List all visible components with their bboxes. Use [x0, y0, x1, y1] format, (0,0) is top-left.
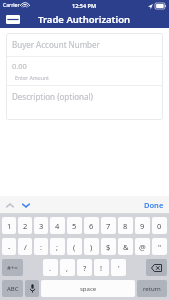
- button[interactable]: 9: [135, 217, 150, 234]
- staticText: .: [49, 263, 52, 273]
- staticText: Carrier: [3, 2, 20, 9]
- button[interactable]: 8: [118, 217, 133, 234]
- staticText: Buyer Account Number: [12, 39, 100, 50]
- button[interactable]: Dictation: [25, 280, 39, 297]
- button[interactable]: Open navigation menu: [4, 13, 21, 26]
- staticText: !: [100, 263, 103, 273]
- button[interactable]: !: [94, 259, 109, 276]
- staticText: 4: [55, 221, 60, 231]
- button[interactable]: .: [43, 259, 58, 276]
- button[interactable]: 2: [18, 217, 32, 234]
- staticText: 0.00: [12, 61, 27, 71]
- button[interactable]: /: [18, 238, 32, 255]
- button[interactable]: :: [34, 238, 48, 255]
- staticText: ): [90, 242, 93, 252]
- button[interactable]: ;: [50, 238, 65, 255]
- staticText: $: [106, 242, 111, 252]
- button[interactable]: @: [135, 238, 150, 255]
- button[interactable]: return: [137, 280, 167, 297]
- button[interactable]: ,: [60, 259, 75, 276]
- staticText: 8: [123, 221, 128, 231]
- staticText: ?: [83, 263, 87, 273]
- staticText: #+=: [7, 264, 18, 272]
- staticText: /: [24, 242, 27, 252]
- button[interactable]: -: [2, 238, 16, 255]
- staticText: 5: [72, 221, 77, 231]
- button[interactable]: ): [84, 238, 99, 255]
- staticText: 12:54 PM: [72, 2, 97, 9]
- button[interactable]: ?: [77, 259, 92, 276]
- staticText: Description (optional): [12, 91, 93, 102]
- staticText: ABC: [7, 285, 19, 293]
- button[interactable]: Next field: [19, 199, 32, 212]
- button[interactable]: ABC: [2, 280, 23, 297]
- staticText: 9: [140, 221, 145, 231]
- staticText: :: [40, 242, 43, 252]
- button[interactable]: ": [152, 238, 167, 255]
- button[interactable]: Previous field: [3, 199, 16, 212]
- button[interactable]: 4: [50, 217, 65, 234]
- staticText: @: [139, 242, 146, 252]
- staticText: 0: [157, 221, 162, 231]
- button[interactable]: Buyer Account Number: [6, 33, 163, 56]
- staticText: 1: [7, 221, 12, 231]
- button[interactable]: Done: [141, 197, 167, 213]
- staticText: return: [143, 285, 161, 293]
- button[interactable]: 6: [84, 217, 99, 234]
- staticText: ;: [56, 242, 59, 252]
- button[interactable]: space: [41, 280, 135, 297]
- staticText: 7: [106, 221, 111, 231]
- staticText: Enter Amount: [15, 74, 49, 81]
- staticText: (: [73, 242, 76, 252]
- staticText: Done: [144, 200, 164, 210]
- button[interactable]: Description (optional): [6, 86, 163, 120]
- button[interactable]: (: [67, 238, 82, 255]
- staticText: ': [118, 263, 120, 273]
- button[interactable]: 0: [152, 217, 167, 234]
- button[interactable]: ': [111, 259, 126, 276]
- button[interactable]: Backspace: [146, 259, 167, 276]
- button[interactable]: 1: [2, 217, 16, 234]
- staticText: &: [123, 242, 129, 252]
- button[interactable]: 7: [101, 217, 116, 234]
- staticText: 2: [23, 221, 28, 231]
- button[interactable]: &: [118, 238, 133, 255]
- staticText: 3: [39, 221, 44, 231]
- staticText: 6: [89, 221, 94, 231]
- button[interactable]: 0.00: [6, 57, 163, 85]
- button[interactable]: $: [101, 238, 116, 255]
- staticText: -: [8, 242, 11, 252]
- staticText: ,: [66, 263, 69, 273]
- button[interactable]: #+=: [2, 259, 23, 276]
- button[interactable]: 5: [67, 217, 82, 234]
- button[interactable]: 3: [34, 217, 48, 234]
- staticText: Trade Authorization: [38, 13, 131, 26]
- staticText: space: [80, 285, 97, 293]
- staticText: ": [158, 242, 162, 252]
